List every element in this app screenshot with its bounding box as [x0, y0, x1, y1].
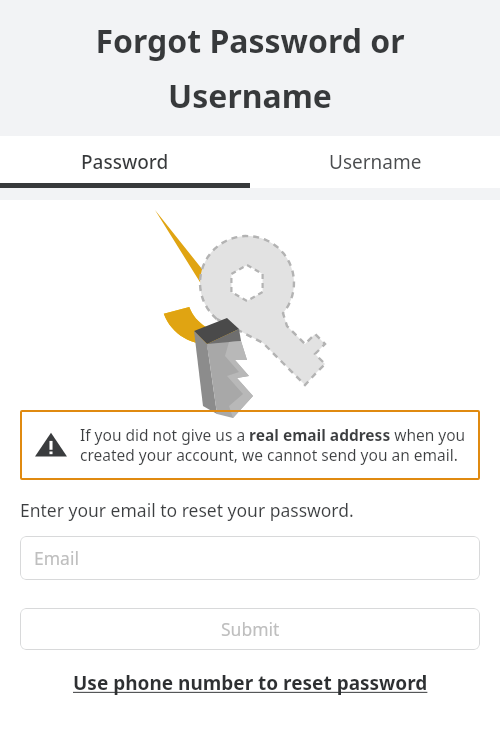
staticText: If you did not give us a real email addr…: [80, 424, 466, 466]
other: Warning: [34, 428, 68, 462]
staticText: Password: [81, 149, 169, 175]
button[interactable]: Submit: [20, 608, 480, 650]
staticText: Forgot Password or Username: [28, 19, 472, 118]
button[interactable]: Email: [20, 536, 480, 580]
staticText: Username: [329, 149, 422, 175]
staticText: Email: [34, 546, 79, 570]
button[interactable]: Username: [250, 136, 500, 188]
button[interactable]: Use phone number to reset password: [0, 666, 500, 700]
staticText: Use phone number to reset password: [73, 670, 428, 696]
staticText: Submit: [221, 617, 280, 641]
staticText: Enter your email to reset your password.: [20, 498, 354, 522]
button[interactable]: Password: [0, 136, 250, 188]
